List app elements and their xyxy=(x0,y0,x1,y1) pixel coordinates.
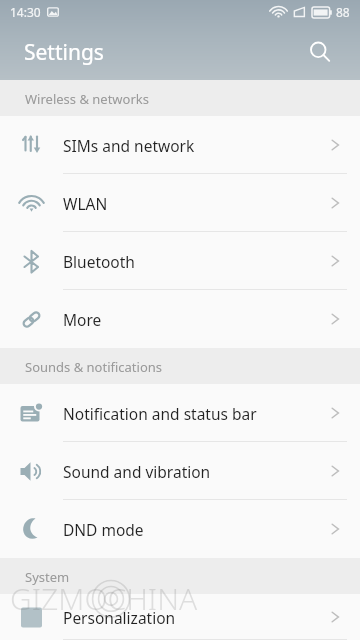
staticText: GIZMOCHINA xyxy=(10,578,198,619)
staticText: DND mode xyxy=(63,519,144,540)
staticText: Settings xyxy=(24,38,104,67)
staticText: System xyxy=(25,568,70,586)
button[interactable]: WLAN xyxy=(0,174,360,232)
button[interactable]: Sound and vibration xyxy=(0,442,360,500)
button[interactable]: Bluetooth xyxy=(0,232,360,290)
staticText: SIMs and network xyxy=(63,135,195,156)
button[interactable]: Personalization xyxy=(0,594,360,640)
staticText: More xyxy=(63,309,102,330)
button[interactable]: Search xyxy=(298,30,342,74)
button[interactable]: SIMs and network xyxy=(0,116,360,174)
staticText: 14:30 xyxy=(10,4,41,20)
button[interactable]: More xyxy=(0,290,360,348)
staticText: Wireless & networks xyxy=(25,90,149,108)
staticText: Bluetooth xyxy=(63,251,135,272)
button[interactable]: DND mode xyxy=(0,500,360,558)
staticText: Sounds & notifications xyxy=(25,358,163,376)
button[interactable]: Notification and status bar xyxy=(0,384,360,442)
staticText: Sound and vibration xyxy=(63,461,211,482)
staticText: Notification and status bar xyxy=(63,403,257,424)
staticText: Personalization xyxy=(63,607,176,628)
staticText: WLAN xyxy=(63,193,108,214)
staticText: 88 xyxy=(336,4,350,20)
